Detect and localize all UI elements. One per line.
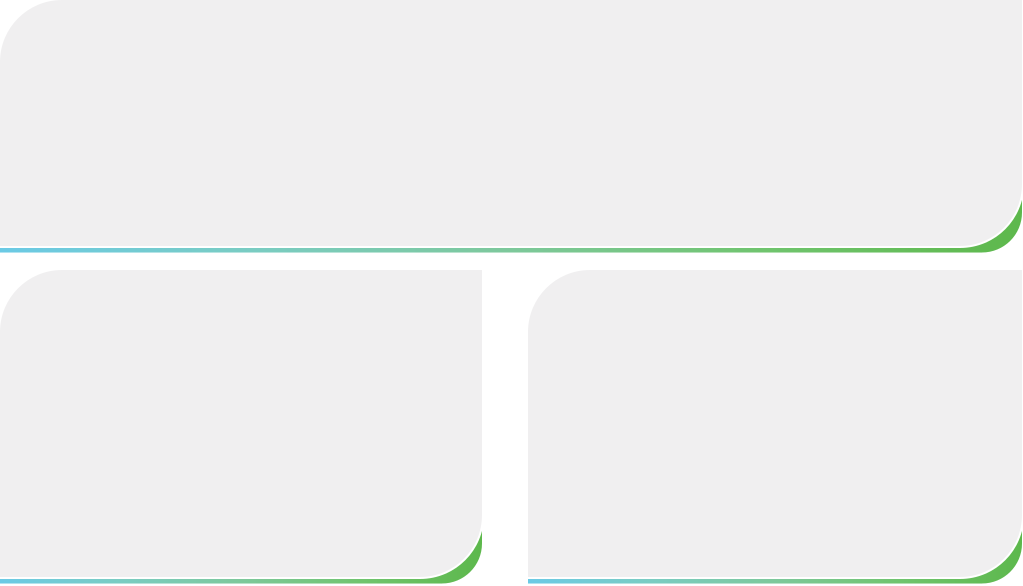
button[interactable] bbox=[0, 0, 1023, 586]
button[interactable] bbox=[0, 0, 1023, 586]
button[interactable] bbox=[0, 0, 1023, 586]
